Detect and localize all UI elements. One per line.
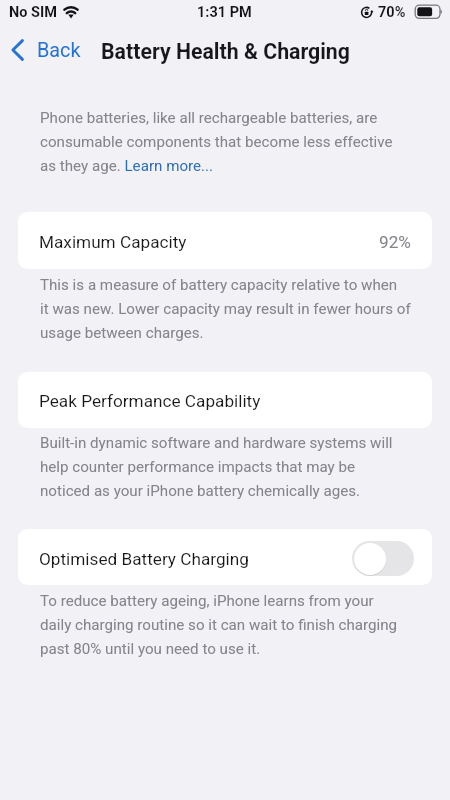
staticText: No SIM xyxy=(9,4,57,21)
button[interactable]: Maximum Capacity xyxy=(18,212,432,269)
staticText: To reduce battery ageing, iPhone learns … xyxy=(40,587,398,659)
staticText: Built-in dynamic software and hardware s… xyxy=(40,429,393,501)
staticText: 1:31 PM xyxy=(197,4,252,21)
staticText: Maximum Capacity xyxy=(39,232,187,252)
button[interactable]: Back xyxy=(11,33,81,67)
staticText: 92% xyxy=(379,232,411,252)
button[interactable]: Optimised Battery Charging xyxy=(352,541,414,576)
staticText: Phone batteries, like all rechargeable b… xyxy=(40,104,393,176)
staticText: 70% xyxy=(378,4,406,21)
staticText: Peak Performance Capability xyxy=(39,391,261,411)
staticText: This is a measure of battery capacity re… xyxy=(40,271,411,343)
staticText: Optimised Battery Charging xyxy=(39,549,249,569)
button[interactable]: Optimised Battery Charging xyxy=(18,529,432,585)
button[interactable]: Peak Performance Capability xyxy=(18,372,432,428)
staticText: Back xyxy=(37,39,81,62)
staticText: Battery Health & Charging xyxy=(101,39,350,64)
